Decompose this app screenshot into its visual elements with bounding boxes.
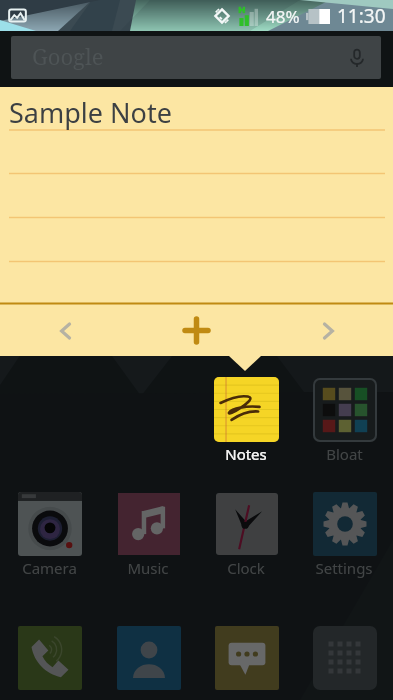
- staticText: Settings: [315, 558, 373, 578]
- staticText: Notes: [225, 444, 267, 464]
- button[interactable]: Notes: [197, 377, 295, 464]
- staticText: Google: [32, 41, 104, 71]
- button[interactable]: Previous note: [0, 305, 131, 356]
- button[interactable]: Next note: [262, 305, 393, 356]
- button[interactable]: Camera: [0, 491, 99, 578]
- button[interactable]: Settings: [295, 491, 393, 578]
- staticText: Clock: [227, 558, 265, 578]
- other: Screenshot captured: [8, 6, 27, 25]
- button[interactable]: [295, 625, 393, 690]
- button[interactable]: Add note: [131, 305, 262, 356]
- staticText: Music: [127, 558, 169, 578]
- staticText: Camera: [22, 558, 77, 578]
- button[interactable]: [197, 625, 295, 690]
- button[interactable]: [99, 625, 197, 690]
- button[interactable]: Clock: [197, 491, 295, 578]
- staticText: Bloat: [326, 444, 363, 464]
- button[interactable]: Notes: [197, 377, 295, 464]
- staticText: Sample Note: [9, 94, 172, 131]
- staticText: 48%: [266, 5, 300, 28]
- button[interactable]: [0, 625, 99, 690]
- staticText: Notes: [225, 444, 267, 464]
- staticText: 11:30: [337, 3, 386, 29]
- other: Voice search: [347, 48, 367, 68]
- button[interactable]: Bloat: [295, 377, 393, 464]
- button[interactable]: Music: [99, 491, 197, 578]
